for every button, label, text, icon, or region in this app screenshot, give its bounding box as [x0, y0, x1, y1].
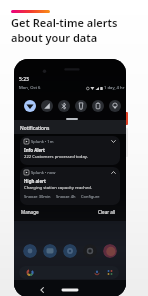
staticText: Get Real-time alerts — [11, 15, 118, 30]
button[interactable]: Snooze 4h — [56, 194, 76, 199]
button[interactable]: Snooze 30min — [24, 194, 51, 199]
button[interactable]: Clear all — [98, 209, 116, 215]
staticText: 5:23 — [19, 76, 29, 83]
button[interactable]: Location — [109, 100, 121, 112]
button[interactable]: App 5 — [103, 244, 117, 258]
staticText: Mon, Oct 6 — [19, 85, 41, 91]
button[interactable]: Configure — [81, 194, 100, 199]
button[interactable]: App 2 — [43, 244, 57, 258]
button[interactable]: Splunk • now — [20, 167, 120, 205]
staticText: Info Alert — [24, 147, 45, 153]
staticText: High alert — [24, 178, 46, 184]
staticText: Splunk • now — [31, 170, 56, 175]
button[interactable]: App 3 — [63, 244, 77, 258]
button[interactable]: Mobile data — [41, 100, 53, 112]
staticText: Splunk • 1m — [31, 139, 54, 144]
button[interactable]: Bluetooth — [58, 100, 70, 112]
staticText: 222 Customers processed today. — [24, 154, 88, 160]
staticText: about your data — [11, 30, 98, 45]
staticText: 1 day, 4 hr — [104, 85, 125, 91]
staticText: Notifications — [20, 125, 50, 132]
button[interactable]: Flashlight — [75, 100, 87, 112]
button[interactable]: App 1 — [23, 244, 37, 258]
button[interactable]: Splunk • 1m — [20, 136, 120, 165]
button[interactable]: Wi-Fi — [24, 100, 36, 112]
staticText: Charging station capacity reached. — [24, 185, 92, 191]
button[interactable]: Manage — [21, 209, 39, 215]
button[interactable]: App 4 — [83, 244, 97, 258]
button[interactable]: Battery saver — [92, 100, 104, 112]
button[interactable]: Search — [19, 266, 119, 279]
